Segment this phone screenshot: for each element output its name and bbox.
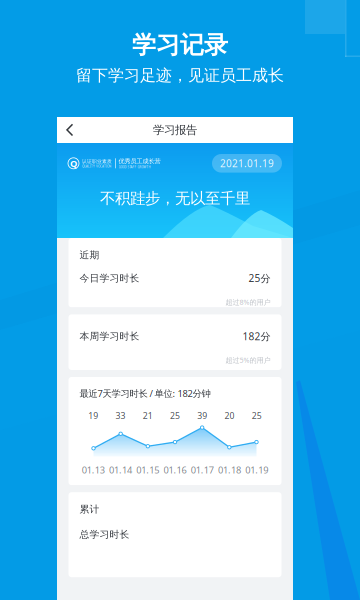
staticText: 21 bbox=[143, 410, 153, 421]
staticText: 01.16 bbox=[163, 463, 186, 476]
staticText: 超过8%的用户 bbox=[225, 297, 270, 307]
staticText: 39 bbox=[197, 410, 207, 421]
staticText: 25分 bbox=[248, 271, 270, 285]
staticText: 学习记录 bbox=[132, 30, 228, 60]
staticText: 25 bbox=[252, 410, 262, 421]
staticText: 2021.01.19 bbox=[220, 156, 274, 170]
staticText: 累计 bbox=[79, 503, 99, 515]
button[interactable]: 返回 bbox=[57, 117, 84, 142]
staticText: GOOD STAFF GROWTH bbox=[119, 165, 151, 169]
staticText: 01.18 bbox=[218, 463, 241, 476]
staticText: 25 bbox=[170, 410, 180, 421]
staticText: 优秀员工成长营 bbox=[119, 157, 161, 165]
staticText: 01.17 bbox=[191, 463, 214, 476]
staticText: 超过5%的用户 bbox=[225, 355, 270, 365]
staticText: 今日学习时长 bbox=[79, 272, 139, 284]
staticText: 最近7天学习时长 / 单位: 182分钟 bbox=[79, 387, 210, 400]
staticText: 33 bbox=[115, 410, 125, 421]
staticText: Q bbox=[70, 157, 77, 170]
staticText: 留下学习足迹，见证员工成长 bbox=[76, 65, 284, 85]
staticText: 19 bbox=[88, 410, 98, 421]
staticText: 01.19 bbox=[245, 463, 268, 476]
staticText: 01.13 bbox=[82, 463, 105, 476]
staticText: 本周学习时长 bbox=[79, 330, 139, 342]
staticText: 不积跬步，无以至千里 bbox=[100, 189, 250, 208]
staticText: 学习报告 bbox=[153, 123, 197, 137]
staticText: 20 bbox=[225, 410, 235, 421]
staticText: QUALITY VOCATION bbox=[82, 164, 111, 168]
staticText: 总学习时长 bbox=[79, 528, 129, 541]
staticText: 认证职业素质 bbox=[82, 158, 112, 164]
staticText: 近期 bbox=[79, 249, 99, 261]
staticText: 182分 bbox=[242, 329, 270, 343]
staticText: 01.15 bbox=[136, 463, 159, 476]
staticText: 01.14 bbox=[109, 463, 132, 476]
